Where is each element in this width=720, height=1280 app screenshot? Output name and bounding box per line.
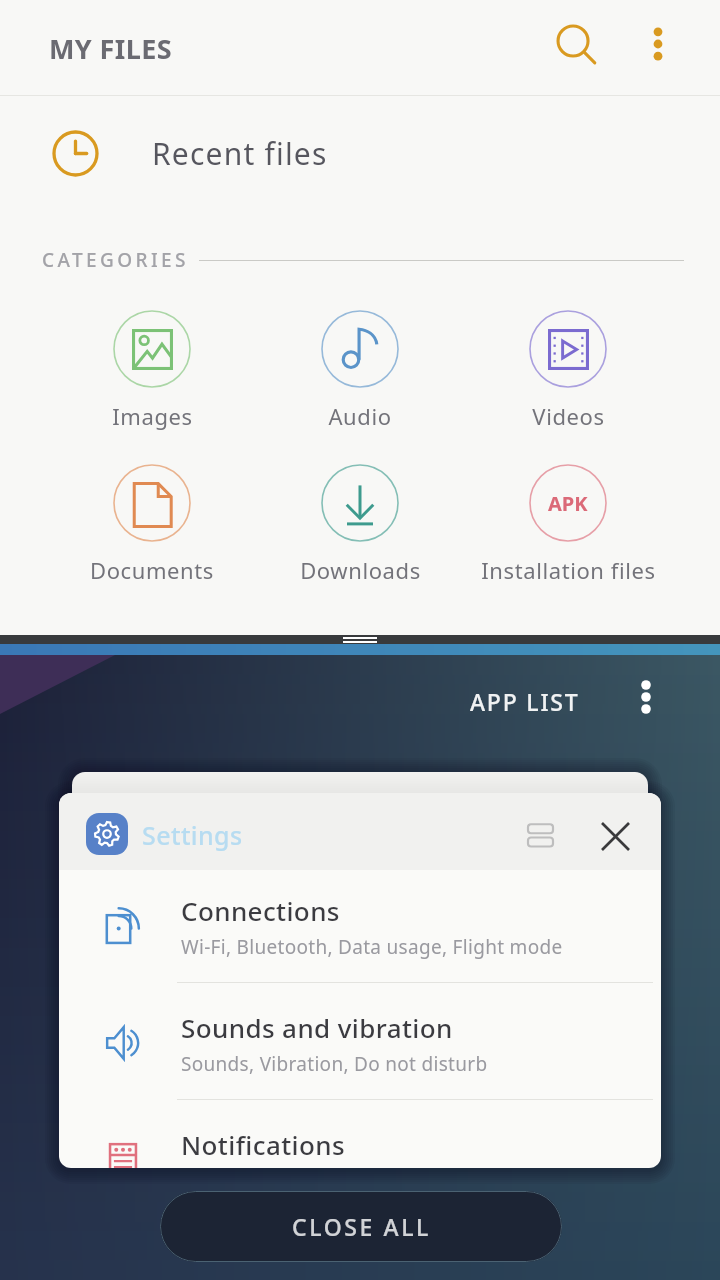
staticText: MY FILES <box>49 30 172 67</box>
staticText: Wi-Fi, Bluetooth, Data usage, Flight mod… <box>181 934 563 960</box>
staticText: Images <box>112 401 193 431</box>
button[interactable]: Videos <box>464 310 672 431</box>
staticText: CATEGORIES <box>42 247 189 273</box>
staticText: Sounds, Vibration, Do not disturb <box>181 1051 488 1077</box>
button[interactable]: Search <box>541 9 613 81</box>
button[interactable]: Connections <box>59 870 661 982</box>
button[interactable]: CLOSE ALL <box>160 1191 562 1262</box>
staticText: Downloads <box>300 555 421 585</box>
staticText: APP LIST <box>470 686 580 717</box>
button[interactable]: APK <box>464 464 672 585</box>
button[interactable]: Images <box>48 310 256 431</box>
staticText: Connections <box>181 893 340 928</box>
button[interactable]: Recent files <box>0 96 720 211</box>
button[interactable]: Settings <box>59 793 661 1168</box>
staticText: Notifications <box>181 1127 345 1162</box>
button[interactable]: Downloads <box>256 464 464 585</box>
staticText: Recent files <box>152 133 328 174</box>
button[interactable]: Close <box>587 808 643 864</box>
button[interactable]: Audio <box>256 310 464 431</box>
button[interactable]: Sounds and vibration <box>59 987 661 1099</box>
staticText: APK <box>548 490 588 517</box>
staticText: Sounds and vibration <box>181 1010 453 1045</box>
button[interactable]: More options <box>626 677 666 717</box>
button[interactable]: Notifications <box>59 1104 661 1168</box>
staticText: CLOSE ALL <box>292 1211 431 1242</box>
button[interactable]: Documents <box>48 464 256 585</box>
staticText: Installation files <box>481 555 656 585</box>
staticText: Documents <box>90 555 214 585</box>
staticText: Audio <box>328 401 392 431</box>
button[interactable]: Split screen <box>514 809 566 861</box>
button[interactable]: More options <box>622 8 694 80</box>
button[interactable]: APP LIST <box>462 678 588 725</box>
staticText: Settings <box>142 818 243 852</box>
staticText: Videos <box>532 401 605 431</box>
